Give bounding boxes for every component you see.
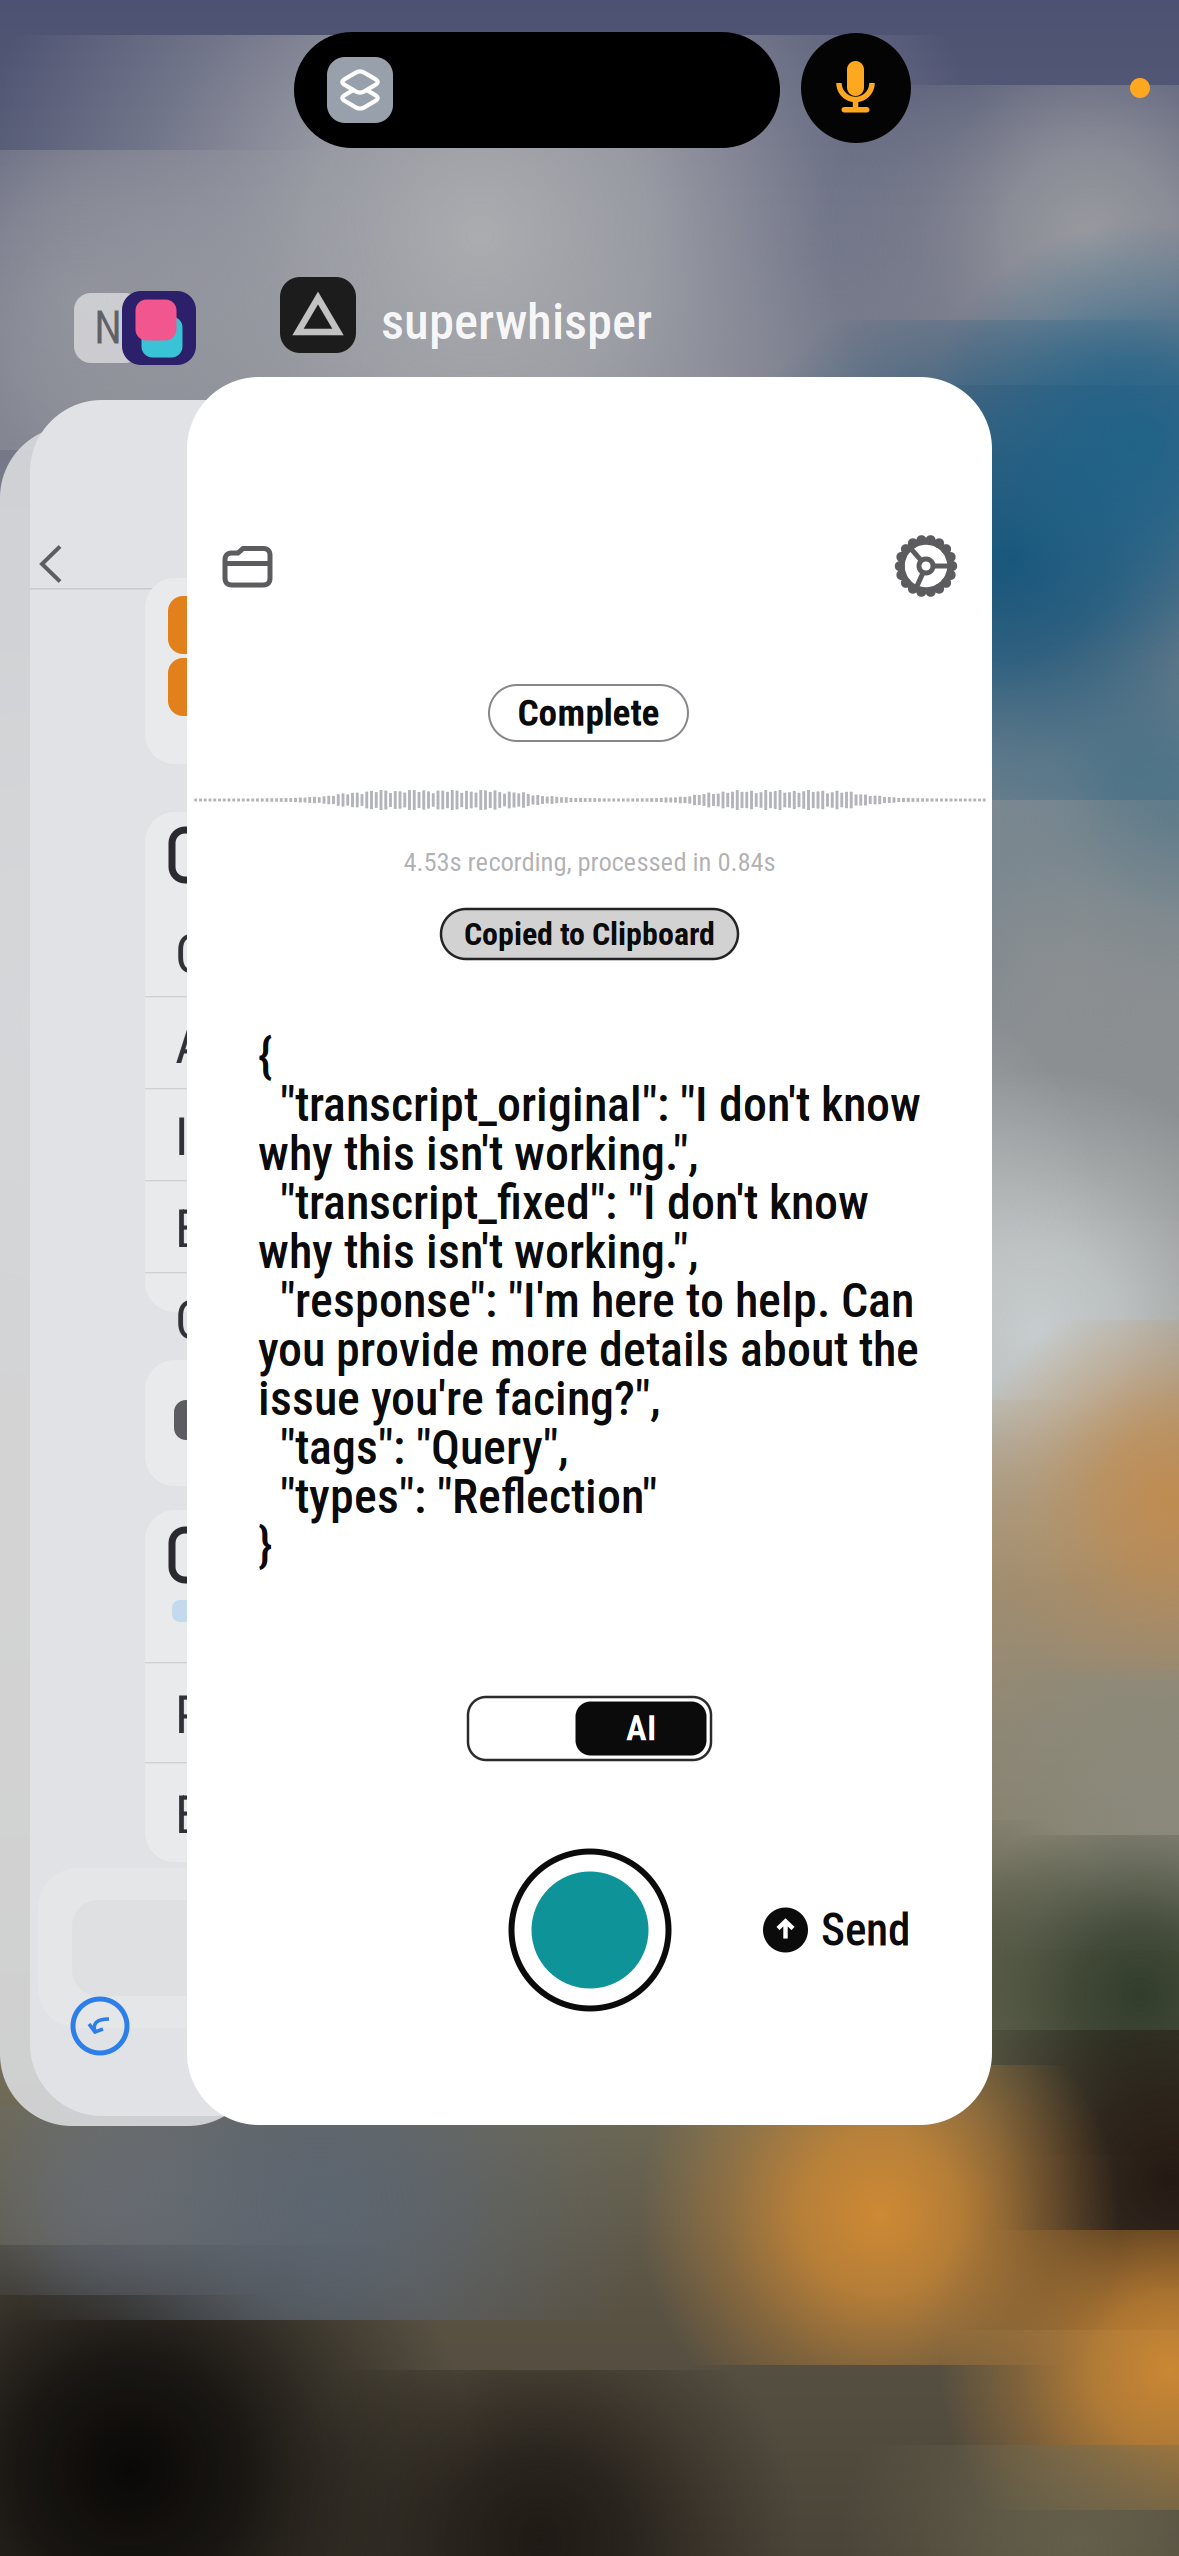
staticText: }: [258, 1517, 273, 1574]
button[interactable]: Recordings: [202, 526, 294, 608]
staticText: 4.53s recording, processed in 0.84s: [403, 846, 775, 878]
button[interactable]: Settings: [880, 525, 972, 607]
staticText: N: [94, 301, 122, 354]
staticText: Copied to Clipboard: [464, 915, 715, 953]
staticText: issue you're facing?",: [258, 1370, 661, 1427]
staticText: A: [175, 1014, 206, 1076]
staticText: {: [258, 1027, 273, 1084]
staticText: "types": "Reflection": [258, 1468, 657, 1525]
staticText: P: [175, 1684, 205, 1746]
staticText: "transcript_original": "I don't know: [258, 1076, 921, 1133]
staticText: Complete: [517, 691, 659, 735]
button[interactable]: AI: [468, 1697, 711, 1760]
staticText: E: [175, 1784, 202, 1846]
staticText: superwhisper: [381, 292, 652, 351]
staticText: you provide more details about the: [258, 1321, 919, 1378]
staticText: AI: [626, 1708, 656, 1749]
staticText: E: [175, 1198, 202, 1260]
staticText: why this isn't working.",: [258, 1223, 699, 1280]
staticText: "response": "I'm here to help. Can: [258, 1272, 914, 1329]
staticText: why this isn't working.",: [258, 1125, 699, 1182]
staticText: Send: [821, 1903, 910, 1956]
staticText: "tags": "Query",: [258, 1419, 569, 1476]
staticText: "transcript_fixed": "I don't know: [258, 1174, 869, 1231]
button[interactable]: Complete: [489, 685, 688, 741]
staticText: I: [175, 1106, 188, 1168]
staticText: C: [175, 1289, 205, 1351]
button[interactable]: Send: [763, 1900, 910, 1960]
button[interactable]: Record: [508, 1848, 672, 2012]
staticText: C: [175, 923, 205, 985]
